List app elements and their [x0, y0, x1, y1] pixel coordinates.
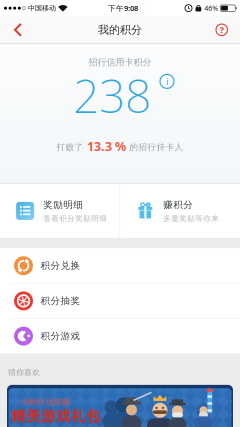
button[interactable]: 积分抽奖	[0, 284, 240, 318]
staticText: 积分抽奖	[40, 295, 80, 307]
staticText: 下午9:08	[108, 3, 138, 13]
staticText: 招行信用卡积分	[88, 56, 151, 68]
staticText: 积分游戏	[40, 330, 80, 342]
staticText: 13.3 %	[87, 138, 126, 155]
staticText: 积分兑换	[40, 260, 80, 272]
button[interactable]: 小积分玩游戏 精美游戏礼包	[7, 385, 233, 427]
staticText: i	[166, 75, 168, 88]
button[interactable]: 赚积分	[120, 184, 240, 238]
staticText: 赚积分	[163, 199, 193, 211]
button[interactable]: 帮助	[216, 16, 240, 44]
staticText: 我的积分	[98, 23, 142, 37]
staticText: 的招行持卡人	[129, 142, 183, 152]
staticText: 查看积分奖励明细	[43, 214, 107, 223]
staticText: 奖励明细	[43, 199, 83, 211]
staticText: 46%	[204, 3, 218, 13]
staticText: 猜你喜欢	[8, 367, 40, 377]
staticText: 中国移动	[28, 4, 56, 12]
staticText: 小积分 玩游戏	[20, 397, 70, 407]
staticText: 238	[73, 64, 151, 126]
staticText: ?	[220, 24, 224, 36]
staticText: 打败了	[56, 142, 83, 152]
staticText: 精美游戏礼包	[11, 407, 101, 425]
button[interactable]: 积分游戏	[0, 319, 240, 353]
staticText: 多重奖励等你来	[163, 214, 219, 223]
button[interactable]: 奖励明细	[0, 184, 120, 238]
button[interactable]: 积分兑换	[0, 248, 240, 283]
button[interactable]: 返回	[0, 16, 23, 44]
